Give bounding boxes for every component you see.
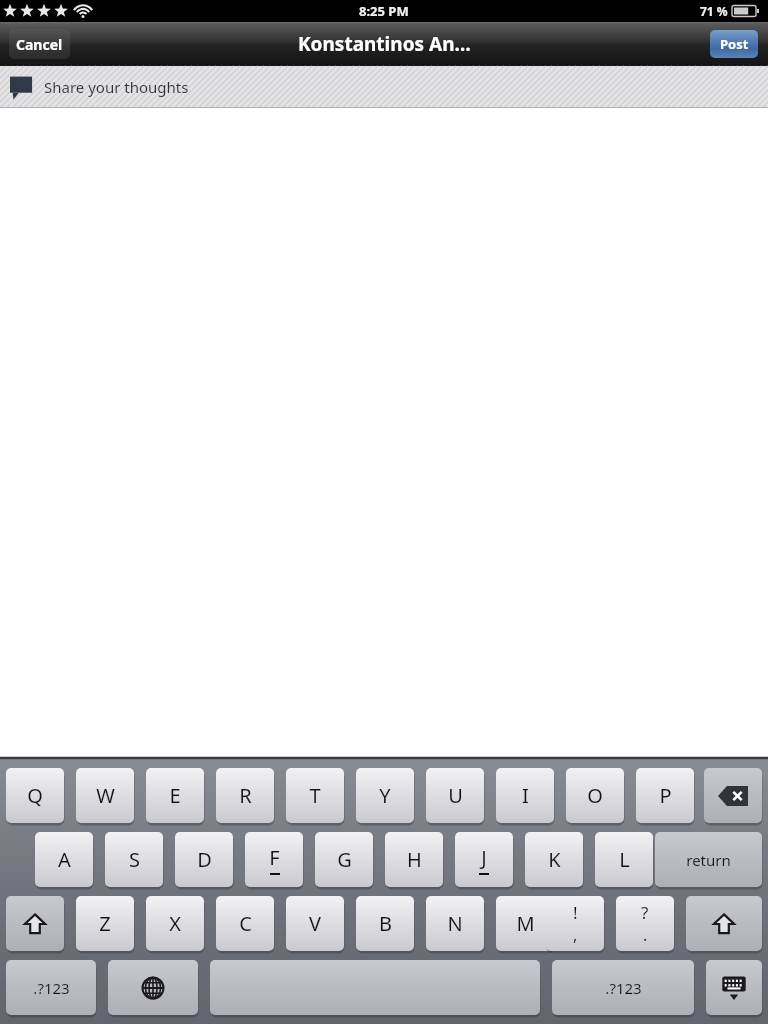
- button[interactable]: C: [216, 896, 274, 951]
- staticText: T: [309, 782, 321, 809]
- button[interactable]: U: [426, 768, 484, 823]
- button[interactable]: E: [146, 768, 204, 823]
- staticText: ?: [641, 901, 649, 924]
- staticText: return: [686, 850, 731, 870]
- button[interactable]: Space: [210, 960, 540, 1015]
- button[interactable]: O: [566, 768, 624, 823]
- button[interactable]: D: [175, 832, 233, 887]
- button[interactable]: Y: [356, 768, 414, 823]
- staticText: O: [587, 782, 603, 809]
- staticText: G: [337, 846, 352, 873]
- staticText: V: [309, 910, 321, 937]
- staticText: U: [448, 782, 463, 809]
- button[interactable]: A: [35, 832, 93, 887]
- staticText: X: [169, 910, 181, 937]
- staticText: H: [407, 846, 422, 873]
- button[interactable]: N: [426, 896, 484, 951]
- button[interactable]: W: [76, 768, 134, 823]
- button[interactable]: Shift: [686, 896, 762, 951]
- staticText: .?123: [33, 978, 70, 998]
- button[interactable]: P: [636, 768, 694, 823]
- button[interactable]: Cancel: [9, 29, 70, 59]
- button[interactable]: Post: [710, 30, 758, 58]
- staticText: 8:25 PM: [359, 2, 409, 20]
- staticText: J: [481, 844, 487, 871]
- staticText: Z: [99, 910, 111, 937]
- staticText: N: [447, 910, 463, 937]
- button[interactable]: G: [315, 832, 373, 887]
- staticText: M: [516, 910, 535, 937]
- staticText: F: [269, 844, 280, 871]
- button[interactable]: I: [496, 768, 554, 823]
- button[interactable]: V: [286, 896, 344, 951]
- staticText: K: [548, 846, 561, 873]
- staticText: R: [239, 782, 252, 809]
- button[interactable]: Delete: [704, 768, 762, 823]
- staticText: Post: [720, 35, 749, 53]
- button[interactable]: .?123: [552, 960, 694, 1015]
- button[interactable]: ?: [616, 896, 674, 951]
- button[interactable]: Z: [76, 896, 134, 951]
- button[interactable]: .?123: [6, 960, 96, 1015]
- staticText: A: [58, 846, 71, 873]
- button[interactable]: X: [146, 896, 204, 951]
- button[interactable]: return: [655, 832, 762, 887]
- button[interactable]: H: [385, 832, 443, 887]
- staticText: 71 %: [700, 3, 728, 19]
- staticText: S: [129, 846, 140, 873]
- button[interactable]: Share your thoughts: [0, 66, 768, 108]
- staticText: W: [96, 782, 115, 809]
- staticText: .: [643, 924, 648, 946]
- button[interactable]: R: [216, 768, 274, 823]
- staticText: ,: [573, 924, 578, 946]
- staticText: Y: [379, 782, 391, 809]
- staticText: B: [379, 910, 392, 937]
- staticText: !: [573, 901, 578, 924]
- staticText: Share your thoughts: [44, 77, 189, 97]
- button[interactable]: B: [356, 896, 414, 951]
- staticText: L: [619, 846, 630, 873]
- button[interactable]: S: [105, 832, 163, 887]
- button[interactable]: Q: [6, 768, 64, 823]
- button[interactable]: M: [496, 896, 554, 951]
- button[interactable]: Next keyboard: [108, 960, 198, 1015]
- button[interactable]: F: [245, 832, 303, 887]
- staticText: C: [239, 910, 252, 937]
- button[interactable]: L: [595, 832, 653, 887]
- staticText: I: [522, 782, 529, 809]
- button[interactable]: Hide keyboard: [706, 960, 762, 1015]
- button[interactable]: T: [286, 768, 344, 823]
- staticText: Konstantinos An…: [298, 31, 471, 57]
- staticText: Q: [27, 782, 43, 809]
- staticText: D: [197, 846, 212, 873]
- button[interactable]: J: [455, 832, 513, 887]
- button[interactable]: Shift: [6, 896, 64, 951]
- staticText: P: [659, 782, 672, 809]
- staticText: .?123: [605, 978, 642, 998]
- staticText: Cancel: [16, 35, 63, 54]
- button[interactable]: !: [546, 896, 604, 951]
- button[interactable]: K: [525, 832, 583, 887]
- staticText: E: [169, 782, 181, 809]
